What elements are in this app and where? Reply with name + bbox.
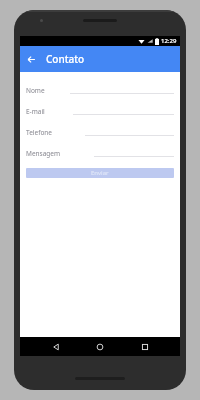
staticText: Enviar (91, 169, 109, 177)
staticText: E-mail (26, 107, 45, 116)
staticText: Telefone (26, 128, 53, 137)
button[interactable]: Nome (26, 86, 174, 95)
button[interactable]: Back (22, 50, 40, 68)
button[interactable]: Home (91, 338, 109, 356)
button[interactable]: E-mail (26, 107, 174, 116)
staticText: Nome (26, 86, 45, 95)
staticText: 12:29 (161, 37, 177, 45)
button[interactable]: Telefone (26, 128, 174, 137)
button[interactable]: Enviar (26, 168, 174, 178)
button[interactable]: Recent apps (136, 338, 154, 356)
staticText: Mensagem (26, 149, 61, 158)
button[interactable]: Back (47, 338, 65, 356)
staticText: Contato (46, 52, 85, 66)
button[interactable]: Mensagem (26, 149, 174, 158)
